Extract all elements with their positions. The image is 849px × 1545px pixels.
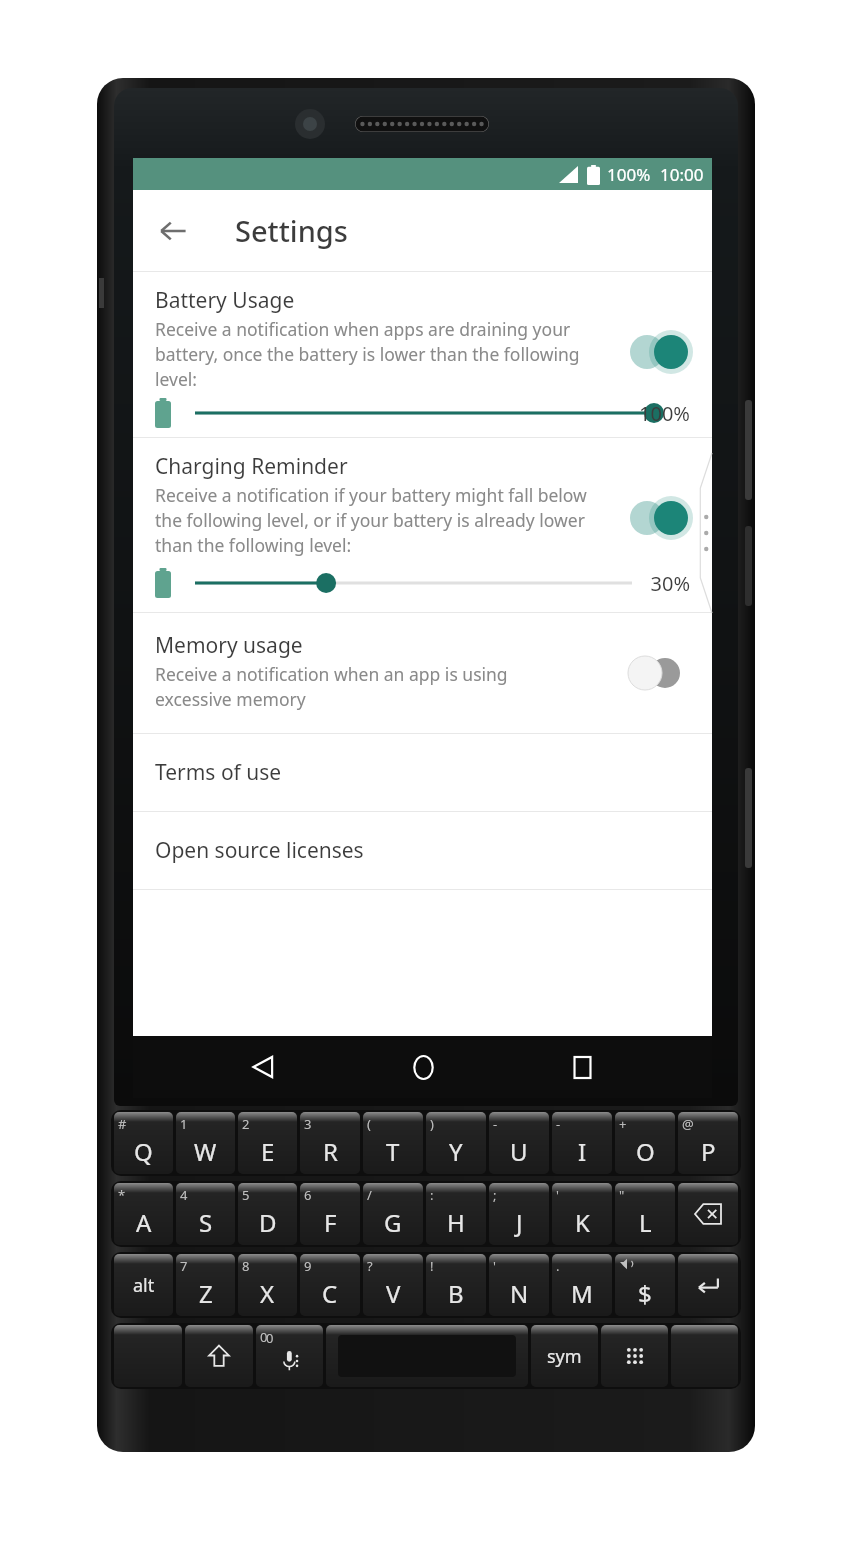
button[interactable]: Toggle on [629,500,691,536]
button[interactable]: O [615,1112,675,1174]
staticText: Y [449,1135,463,1168]
staticText: Open source licenses [155,836,364,865]
button[interactable]: M [552,1254,612,1316]
staticText: - [493,1115,498,1133]
staticText: V [386,1277,401,1310]
button[interactable]: space [326,1325,528,1387]
button[interactable]: N [489,1254,549,1316]
staticText: E [261,1135,275,1168]
staticText: K [575,1206,590,1239]
button[interactable]: L [615,1183,675,1245]
button[interactable]: Charging Reminder [133,438,712,612]
staticText: ) [430,1115,434,1133]
staticText: Settings [235,211,348,250]
staticText: F [324,1206,337,1239]
staticText: ! [430,1257,434,1275]
staticText: 8 [242,1257,250,1275]
staticText: Receive a notification if your battery m… [155,483,587,557]
button[interactable]: I [552,1112,612,1174]
button[interactable]: enter [678,1254,738,1316]
button[interactable]: grid [601,1325,668,1387]
button[interactable]: alt [114,1254,173,1316]
button[interactable]: mic [256,1325,323,1387]
staticText: 100% [639,400,690,427]
button[interactable]: Toggle off [625,655,687,691]
staticText: Receive a notification when apps are dra… [155,317,580,391]
button[interactable]: Terms of use [133,734,712,811]
staticText: Memory usage [155,631,303,660]
button[interactable]: sym [531,1325,598,1387]
button[interactable]: Toggle on [629,334,691,370]
staticText: I [578,1135,587,1168]
button[interactable]: H [426,1183,486,1245]
button[interactable]: Q [114,1112,173,1174]
staticText: A [136,1206,152,1239]
staticText: N [510,1277,529,1310]
button[interactable]: A [114,1183,173,1245]
button[interactable]: Battery Usage [133,272,712,437]
button[interactable]: $ [615,1254,675,1316]
staticText: ? [367,1257,373,1275]
staticText: ' [493,1257,496,1275]
staticText: H [447,1206,465,1239]
button[interactable]: J [489,1183,549,1245]
button[interactable]: Recents [553,1038,611,1096]
staticText: D [259,1206,277,1239]
staticText: C [322,1277,338,1310]
button[interactable]: Level slider [195,396,690,430]
staticText: Terms of use [155,758,282,787]
staticText: : [430,1186,434,1204]
button[interactable]: E [238,1112,297,1174]
staticText: X [260,1277,275,1310]
button[interactable]: G [363,1183,423,1245]
staticText: $ [638,1277,652,1310]
staticText: 7 [180,1257,188,1275]
staticText: sym [547,1344,582,1369]
staticText: ' [556,1186,559,1204]
staticText: * [118,1186,126,1204]
button[interactable]: Memory usage [133,613,712,733]
staticText: 0 [260,1328,268,1346]
button[interactable]: Open source licenses [133,812,712,889]
button[interactable]: W [176,1112,235,1174]
staticText: . [556,1257,560,1275]
button[interactable]: shift [185,1325,253,1387]
button[interactable]: D [238,1183,297,1245]
staticText: - [556,1115,561,1133]
button[interactable]: Back [234,1038,292,1096]
button[interactable]: X [238,1254,297,1316]
button[interactable]: U [489,1112,549,1174]
button[interactable]: P [678,1112,738,1174]
staticText: ; [493,1186,497,1204]
button[interactable] [114,1325,182,1387]
staticText: 0 [266,1329,274,1347]
staticText: Z [199,1277,213,1310]
staticText: 100% [607,163,651,186]
button[interactable]: T [363,1112,423,1174]
staticText: O [636,1135,655,1168]
button[interactable]: F [300,1183,360,1245]
staticText: M [571,1277,593,1310]
button[interactable]: Z [176,1254,235,1316]
button[interactable]: V [363,1254,423,1316]
button[interactable] [671,1325,738,1387]
staticText: Q [134,1135,153,1168]
staticText: L [639,1206,652,1239]
button[interactable]: B [426,1254,486,1316]
button[interactable]: Home [394,1038,452,1096]
button[interactable]: del [678,1183,738,1245]
button[interactable]: K [552,1183,612,1245]
button[interactable]: R [300,1112,360,1174]
button[interactable]: Back [147,205,199,257]
staticText: P [701,1135,716,1168]
button[interactable]: S [176,1183,235,1245]
button[interactable]: Y [426,1112,486,1174]
staticText: B [448,1277,464,1310]
staticText: R [323,1135,338,1168]
button[interactable]: Level slider [195,566,632,600]
staticText: 3 [304,1115,312,1133]
staticText: + [619,1115,627,1133]
staticText: Receive a notification when an app is us… [155,662,508,711]
staticText: 4 [180,1186,188,1204]
button[interactable]: C [300,1254,360,1316]
